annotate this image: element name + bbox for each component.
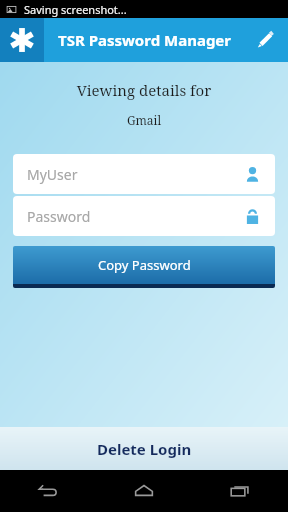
button[interactable]: MyUser — [13, 154, 275, 194]
staticText: Password — [27, 207, 91, 226]
staticText: MyUser — [27, 165, 78, 184]
staticText: Gmail — [0, 112, 288, 128]
button[interactable]: Password — [13, 196, 275, 236]
button[interactable]: Home — [96, 470, 192, 512]
button[interactable]: Back — [0, 470, 96, 512]
staticText: TSR Password Manager — [58, 30, 232, 50]
staticText: Delete Login — [97, 439, 192, 459]
button[interactable]: Recents — [192, 470, 288, 512]
staticText: Saving screenshot... — [24, 2, 127, 17]
staticText: Copy Password — [98, 256, 191, 274]
button[interactable]: Delete Login — [0, 427, 288, 470]
button[interactable]: Copy Password — [13, 246, 275, 288]
button[interactable]: Edit — [242, 18, 288, 62]
staticText: Viewing details for — [0, 80, 288, 100]
